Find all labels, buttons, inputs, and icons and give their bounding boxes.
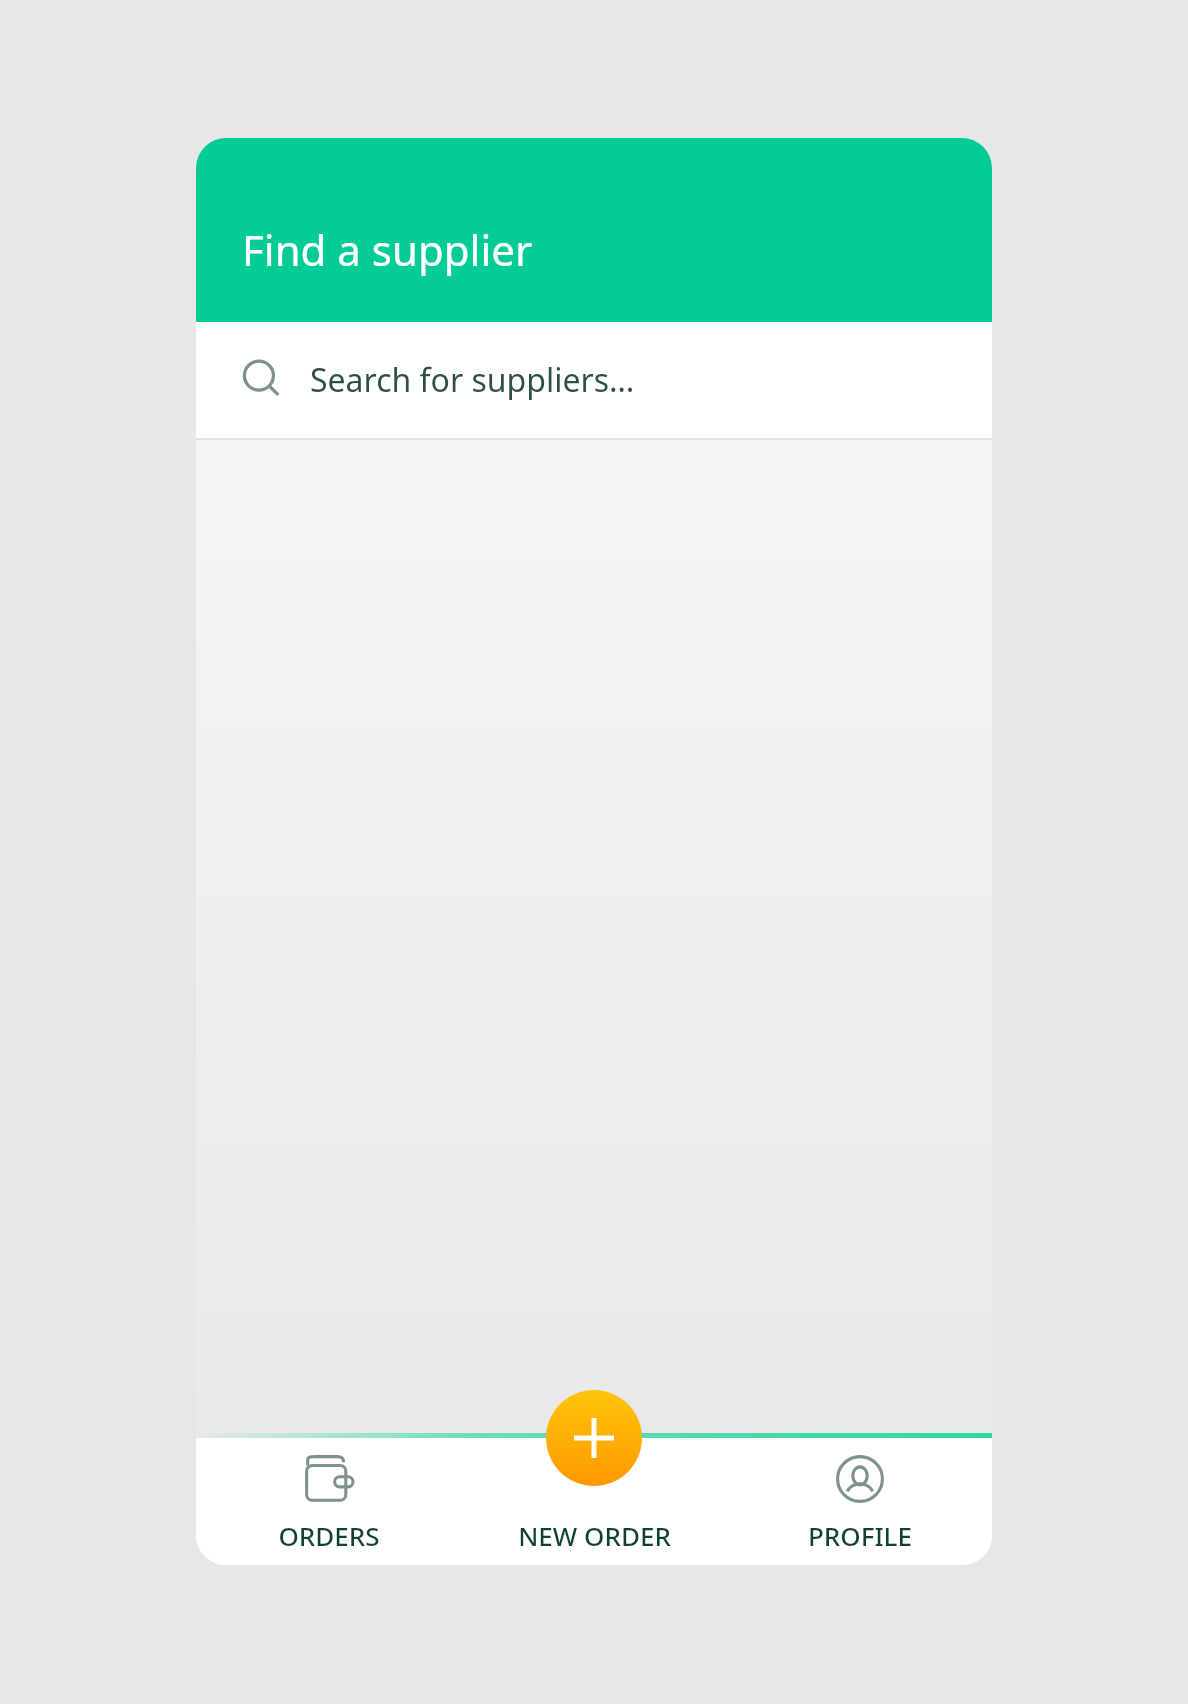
staticText: PROFILE (808, 1518, 912, 1553)
button[interactable]: ORDERS (196, 1438, 462, 1565)
button[interactable]: New order (546, 1390, 642, 1486)
staticText: Search for suppliers… (310, 358, 635, 402)
button[interactable]: PROFILE (727, 1438, 992, 1565)
staticText: ORDERS (278, 1518, 380, 1553)
button[interactable]: NEW ORDER (462, 1438, 727, 1565)
staticText: NEW ORDER (518, 1518, 671, 1553)
staticText: Find a supplier (242, 221, 533, 278)
button[interactable]: Search for suppliers… (196, 322, 992, 438)
